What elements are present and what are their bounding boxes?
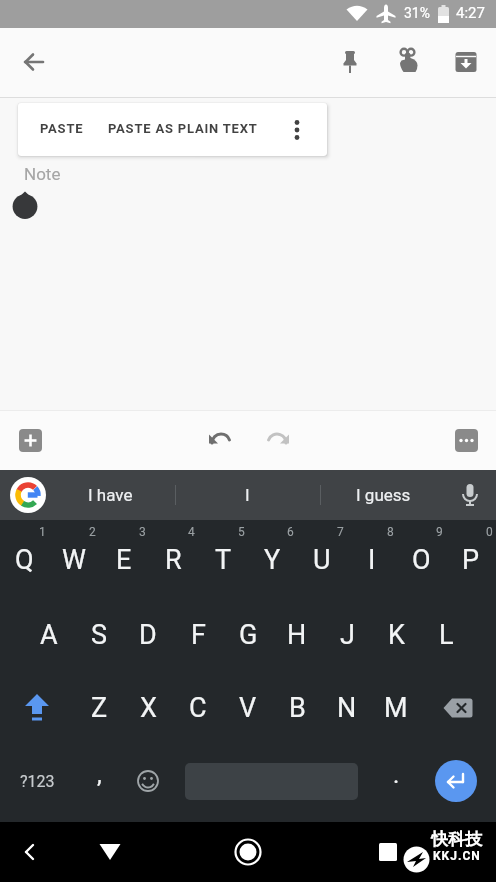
staticText: I xyxy=(368,544,376,576)
button[interactable]: R xyxy=(149,538,197,582)
staticText: T xyxy=(215,544,232,576)
button[interactable]: W xyxy=(50,538,98,582)
staticText: K xyxy=(388,619,405,651)
button[interactable]: D xyxy=(124,613,172,657)
staticText: 2 xyxy=(89,525,96,539)
button[interactable]: Q xyxy=(0,538,48,582)
button[interactable] xyxy=(366,830,410,874)
staticText: O xyxy=(412,544,431,576)
staticText: H xyxy=(287,619,307,651)
button[interactable]: B xyxy=(273,686,321,730)
staticText: I have xyxy=(88,485,133,505)
button[interactable]: I guess xyxy=(333,470,433,520)
button[interactable]: PASTE xyxy=(40,121,84,136)
staticText: Q xyxy=(15,544,34,576)
staticText: C xyxy=(189,692,207,724)
button[interactable] xyxy=(444,418,488,462)
button[interactable]: O xyxy=(397,538,445,582)
button[interactable]: Y xyxy=(248,538,296,582)
staticText: S xyxy=(91,619,108,651)
button[interactable]: PASTE AS PLAIN TEXT xyxy=(108,121,258,136)
staticText: 快科技 xyxy=(431,829,482,850)
staticText: , xyxy=(97,761,102,789)
staticText: R xyxy=(165,544,182,576)
staticText: 4:27 xyxy=(456,4,485,22)
staticText: 31% xyxy=(404,5,430,21)
staticText: 0 xyxy=(486,525,493,539)
button[interactable]: N xyxy=(323,686,371,730)
staticText: L xyxy=(439,619,454,651)
staticText: 8 xyxy=(387,525,394,539)
staticText: F xyxy=(191,619,206,651)
button[interactable] xyxy=(255,418,299,462)
button[interactable]: E xyxy=(100,538,148,582)
staticText: A xyxy=(40,619,58,651)
button[interactable]: K xyxy=(372,613,420,657)
staticText: Y xyxy=(264,544,281,576)
staticText: M xyxy=(384,692,408,724)
button[interactable]: H xyxy=(273,613,321,657)
button[interactable] xyxy=(88,830,132,874)
button[interactable] xyxy=(433,686,483,730)
staticText: 7 xyxy=(337,525,344,539)
staticText: 5 xyxy=(238,525,245,539)
staticText: X xyxy=(140,692,157,724)
staticText: P xyxy=(462,544,480,576)
button[interactable] xyxy=(386,40,430,84)
staticText: E xyxy=(116,544,132,576)
button[interactable]: C xyxy=(174,686,222,730)
staticText: . xyxy=(393,761,400,789)
button[interactable] xyxy=(10,477,46,513)
staticText: Note xyxy=(24,164,61,184)
button[interactable] xyxy=(275,108,319,152)
button[interactable] xyxy=(128,760,168,802)
staticText: Z xyxy=(91,692,108,724)
staticText: D xyxy=(139,619,157,651)
staticText: J xyxy=(340,619,355,651)
button[interactable] xyxy=(12,40,56,84)
button[interactable]: , xyxy=(79,760,119,802)
button[interactable]: A xyxy=(25,613,73,657)
staticText: B xyxy=(289,692,306,724)
button[interactable]: S xyxy=(75,613,123,657)
button[interactable]: F xyxy=(174,613,222,657)
staticText: W xyxy=(62,544,86,576)
staticText: 4 xyxy=(188,525,195,539)
button[interactable]: . xyxy=(376,760,416,802)
staticText: 1 xyxy=(39,525,46,539)
staticText: I guess xyxy=(356,485,411,505)
button[interactable] xyxy=(435,760,477,802)
button[interactable]: M xyxy=(372,686,420,730)
staticText: KKJ.CN xyxy=(433,849,481,863)
staticText: ?123 xyxy=(20,772,55,791)
staticText: N xyxy=(337,692,357,724)
staticText: V xyxy=(239,692,257,724)
button[interactable]: ?123 xyxy=(10,760,64,802)
button[interactable]: J xyxy=(323,613,371,657)
button[interactable] xyxy=(8,418,52,462)
button[interactable]: I have xyxy=(60,470,160,520)
button[interactable]: P xyxy=(447,538,495,582)
staticText: 3 xyxy=(139,525,146,539)
button[interactable]: I xyxy=(197,470,297,520)
button[interactable]: L xyxy=(422,613,470,657)
staticText: I xyxy=(245,485,250,505)
button[interactable]: T xyxy=(199,538,247,582)
staticText: G xyxy=(239,619,258,651)
staticText: U xyxy=(313,544,331,576)
button[interactable] xyxy=(328,40,372,84)
button[interactable]: V xyxy=(224,686,272,730)
button[interactable]: I xyxy=(348,538,396,582)
button[interactable]: Z xyxy=(75,686,123,730)
button[interactable] xyxy=(8,830,52,874)
button[interactable]: U xyxy=(298,538,346,582)
button[interactable]: G xyxy=(224,613,272,657)
button[interactable] xyxy=(226,830,270,874)
button[interactable] xyxy=(12,686,62,730)
button[interactable]: X xyxy=(124,686,172,730)
button[interactable] xyxy=(444,40,488,84)
button[interactable] xyxy=(199,418,243,462)
staticText: 9 xyxy=(436,525,443,539)
button[interactable] xyxy=(448,473,492,517)
